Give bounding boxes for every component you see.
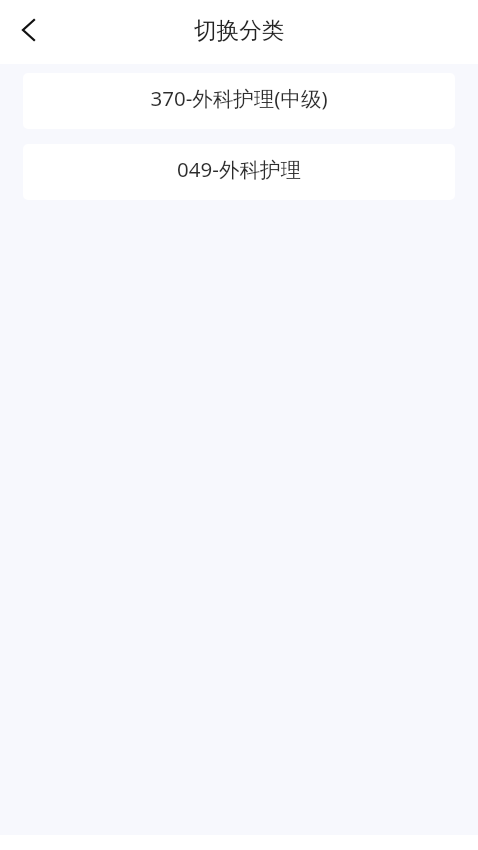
- staticText: 切换分类: [194, 16, 285, 44]
- staticText: 049-外科护理: [177, 155, 301, 183]
- button[interactable]: 049-外科护理: [23, 144, 455, 200]
- staticText: 370-外科护理(中级): [150, 84, 328, 112]
- button[interactable]: 370-外科护理(中级): [23, 73, 455, 129]
- button[interactable]: Back: [5, 7, 51, 53]
